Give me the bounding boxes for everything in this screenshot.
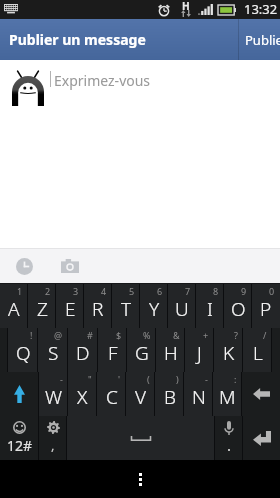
staticText: V — [135, 384, 147, 410]
staticText: 1 — [17, 285, 23, 297]
staticText: Publier un message — [9, 30, 146, 49]
staticText: 7 — [185, 285, 191, 297]
staticText: : — [234, 373, 237, 385]
staticText: - — [205, 373, 208, 385]
staticText: S — [48, 340, 59, 366]
other: Shift — [0, 372, 39, 416]
button[interactable]: R — [84, 284, 112, 328]
staticText: & — [173, 329, 180, 341]
button[interactable]: B — [155, 372, 184, 416]
button[interactable]: Backspace — [242, 372, 280, 416]
staticText: Publier — [245, 31, 280, 49]
button[interactable]: Camera — [53, 249, 87, 283]
staticText: D — [76, 340, 90, 366]
staticText: U — [175, 296, 189, 322]
staticText: 5 — [129, 285, 135, 297]
staticText: 6 — [157, 285, 163, 297]
button[interactable]: Y — [140, 284, 168, 328]
other: Settings — [39, 416, 67, 460]
staticText: 3 — [73, 285, 79, 297]
staticText: N — [192, 384, 206, 410]
staticText: T — [121, 296, 132, 322]
staticText: 2 — [45, 285, 51, 297]
button[interactable]: P — [252, 284, 280, 328]
button[interactable]: Voice input — [215, 416, 243, 460]
staticText: F — [108, 340, 118, 366]
staticText: A — [8, 296, 20, 322]
button[interactable]: J — [185, 328, 214, 372]
other: Voice input — [215, 416, 243, 460]
button[interactable]: V — [126, 372, 155, 416]
button[interactable] — [0, 328, 8, 372]
staticText: 13:32 — [244, 0, 278, 18]
staticText: K — [223, 340, 235, 366]
button[interactable]: Q — [8, 328, 38, 372]
button[interactable]: G — [127, 328, 156, 372]
staticText: L — [253, 340, 263, 366]
button[interactable]: O — [224, 284, 252, 328]
staticText: , — [51, 436, 55, 454]
staticText: Z — [37, 296, 48, 322]
staticText: ' — [118, 373, 121, 385]
staticText: R — [92, 296, 104, 322]
staticText: Exprimez-vous — [54, 71, 151, 90]
button[interactable]: X — [68, 372, 97, 416]
button[interactable]: I — [196, 284, 224, 328]
staticText: B — [164, 384, 176, 410]
button[interactable]: M — [213, 372, 242, 416]
button[interactable]: E — [56, 284, 84, 328]
button[interactable]: Schedule — [7, 249, 41, 283]
button[interactable]: Emoji — [0, 416, 39, 460]
staticText: 8 — [213, 285, 219, 297]
staticText: H — [164, 340, 178, 366]
staticText: 4 — [101, 285, 107, 297]
staticText: ( — [147, 373, 150, 385]
button[interactable]: K — [214, 328, 243, 372]
staticText: J — [197, 340, 202, 366]
other: Emoji — [0, 416, 39, 460]
staticText: G — [135, 340, 149, 366]
button[interactable]: Enter — [243, 416, 280, 460]
button[interactable]: W — [39, 372, 68, 416]
staticText: ) — [176, 373, 179, 385]
other: Enter — [243, 416, 280, 460]
button[interactable]: U — [168, 284, 196, 328]
button[interactable]: Publier — [238, 19, 280, 60]
staticText: - — [60, 373, 63, 385]
staticText: @ — [54, 329, 63, 341]
button[interactable]: A — [0, 284, 28, 328]
button[interactable]: Settings — [39, 416, 67, 460]
button[interactable]: L — [243, 328, 272, 372]
staticText: Q — [16, 340, 31, 366]
other: Space — [67, 416, 215, 460]
button[interactable]: C — [97, 372, 126, 416]
staticText: ! — [30, 329, 33, 341]
staticText: E — [65, 296, 76, 322]
button[interactable]: S — [38, 328, 68, 372]
button[interactable]: T — [112, 284, 140, 328]
button[interactable]: N — [184, 372, 213, 416]
staticText: P — [260, 296, 272, 322]
staticText: + — [203, 329, 209, 341]
button[interactable]: Space — [67, 416, 215, 460]
staticText: # — [87, 329, 93, 341]
staticText: H — [182, 0, 190, 13]
staticText: Y — [149, 296, 160, 322]
staticText: ? — [234, 329, 238, 341]
staticText: " — [88, 373, 92, 385]
staticText: I — [207, 296, 213, 322]
staticText: 12# — [7, 436, 33, 455]
button[interactable]: Z — [28, 284, 56, 328]
staticText: % — [143, 329, 151, 341]
button[interactable]: Shift — [0, 372, 39, 416]
staticText: X — [77, 384, 88, 410]
other: Backspace — [242, 372, 280, 416]
button[interactable]: More options — [118, 460, 162, 498]
staticText: O — [231, 296, 246, 322]
staticText: W — [45, 384, 63, 410]
staticText: M — [219, 384, 236, 410]
button[interactable]: H — [156, 328, 185, 372]
button[interactable]: D — [68, 328, 98, 372]
button[interactable]: F — [98, 328, 127, 372]
